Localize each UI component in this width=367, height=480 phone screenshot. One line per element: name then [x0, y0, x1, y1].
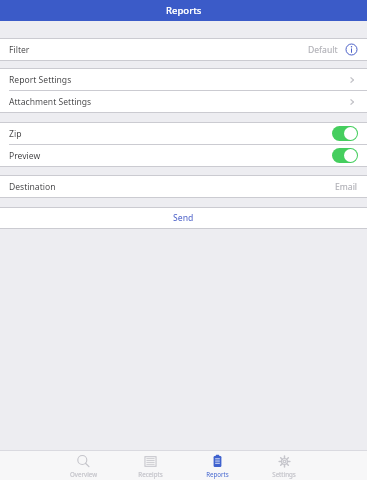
staticText: Default	[308, 44, 338, 56]
button[interactable]: Receipts	[126, 451, 174, 480]
button[interactable]: Overview	[59, 451, 107, 480]
button[interactable]: Filter info	[345, 43, 358, 56]
staticText: Filter	[9, 44, 30, 56]
button[interactable]: Attachment Settings	[0, 91, 367, 112]
staticText: Zip	[9, 128, 22, 140]
button[interactable]: Zip toggle	[332, 126, 358, 141]
staticText: Report Settings	[9, 74, 72, 86]
staticText: Attachment Settings	[9, 96, 92, 108]
staticText: Settings	[272, 470, 296, 478]
staticText: Email	[335, 181, 358, 193]
button[interactable]: Report Settings	[0, 69, 367, 90]
staticText: Receipts	[138, 470, 163, 478]
button[interactable]: Zip	[0, 123, 367, 144]
button[interactable]: Filter	[0, 39, 367, 60]
button[interactable]: Preview	[0, 145, 367, 166]
button[interactable]: Destination	[0, 176, 367, 197]
staticText: Overview	[70, 470, 97, 478]
staticText: Reports	[206, 470, 229, 478]
button[interactable]: Preview toggle	[332, 148, 358, 163]
button[interactable]: Reports	[193, 451, 241, 480]
staticText: Send	[173, 212, 194, 224]
button[interactable]: Settings	[260, 451, 308, 480]
staticText: Reports	[166, 4, 202, 17]
staticText: Destination	[9, 181, 56, 193]
button[interactable]: Send	[0, 208, 367, 228]
staticText: Preview	[9, 150, 41, 162]
